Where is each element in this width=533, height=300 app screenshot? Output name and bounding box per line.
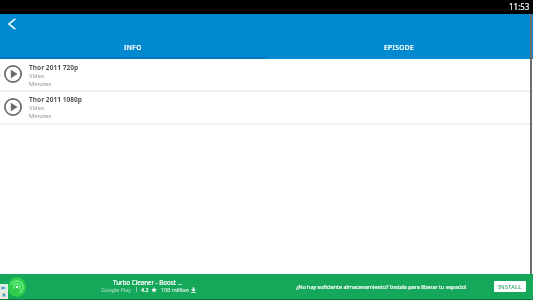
button[interactable]: INSTALL xyxy=(494,281,526,292)
button[interactable]: Back xyxy=(1,14,22,33)
staticText: INSTALL xyxy=(498,283,522,291)
button[interactable]: Thor 2011 720p xyxy=(0,59,533,90)
button[interactable]: EPISODE xyxy=(266,35,533,59)
button[interactable]: INFO xyxy=(0,35,266,59)
staticText: ¿No hay suficiente almacenamiento? Insta… xyxy=(296,283,467,290)
staticText: 100 million xyxy=(161,286,189,293)
staticText: Video xyxy=(29,72,45,80)
staticText: 11:53 xyxy=(509,1,530,12)
staticText: INFO xyxy=(124,43,142,52)
staticText: Turbo Cleaner - Boost ... xyxy=(113,278,183,286)
staticText: 4.2 xyxy=(141,286,149,293)
staticText: Google Play xyxy=(101,286,132,293)
staticText: Minutes xyxy=(29,112,52,120)
button[interactable]: Thor 2011 1080p xyxy=(0,92,533,123)
staticText: Thor 2011 720p xyxy=(29,63,79,72)
staticText: Minutes xyxy=(29,80,52,88)
staticText: EPISODE xyxy=(384,43,415,52)
staticText: Video xyxy=(29,104,45,112)
staticText: Thor 2011 1080p xyxy=(29,95,82,104)
